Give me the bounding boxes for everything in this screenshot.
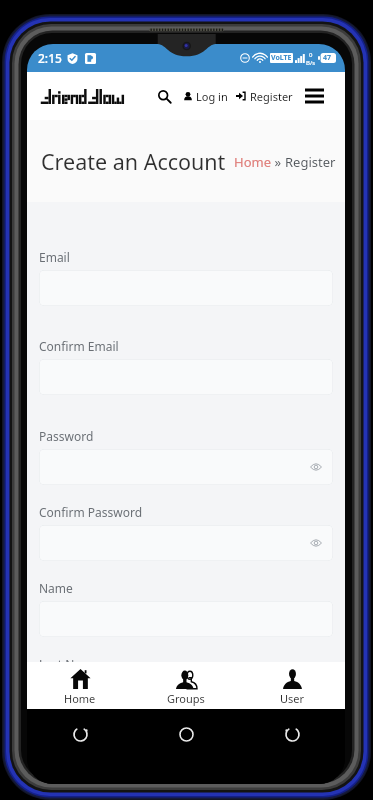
button[interactable]: FriendFlow home [42,89,125,104]
staticText: Create an Account [41,147,226,176]
button[interactable]: Menu [305,88,324,104]
button[interactable]: Home [27,662,133,709]
button[interactable] [39,449,333,485]
button[interactable]: Register [236,72,293,120]
staticText: B/s [306,59,316,65]
staticText: 0 [309,51,313,59]
staticText: Email [39,249,70,265]
staticText: 47 [323,53,332,63]
button[interactable] [39,525,333,561]
button[interactable]: Back [239,709,345,759]
staticText: Password [39,428,94,444]
button[interactable]: User [239,662,345,709]
button[interactable]: Search [154,86,174,106]
button[interactable]: Log in [184,72,228,120]
button[interactable]: Groups [133,662,239,709]
staticText: Register [250,89,293,104]
staticText: VoLTE [271,53,292,63]
staticText: Groups [167,691,205,706]
staticText: 2:15 [38,50,62,66]
button[interactable]: Home [133,709,239,759]
staticText: Name [39,580,73,596]
staticText: Last Name [39,656,100,672]
button[interactable]: Recents [27,709,133,759]
staticText: Register [285,153,336,171]
staticText: Log in [196,89,228,104]
staticText: User [280,691,305,706]
staticText: Confirm Password [39,504,143,520]
staticText: » [271,153,285,171]
staticText: Home [64,691,96,706]
button[interactable]: Home [234,153,271,171]
button[interactable] [39,677,333,713]
staticText: Confirm Email [39,338,119,354]
